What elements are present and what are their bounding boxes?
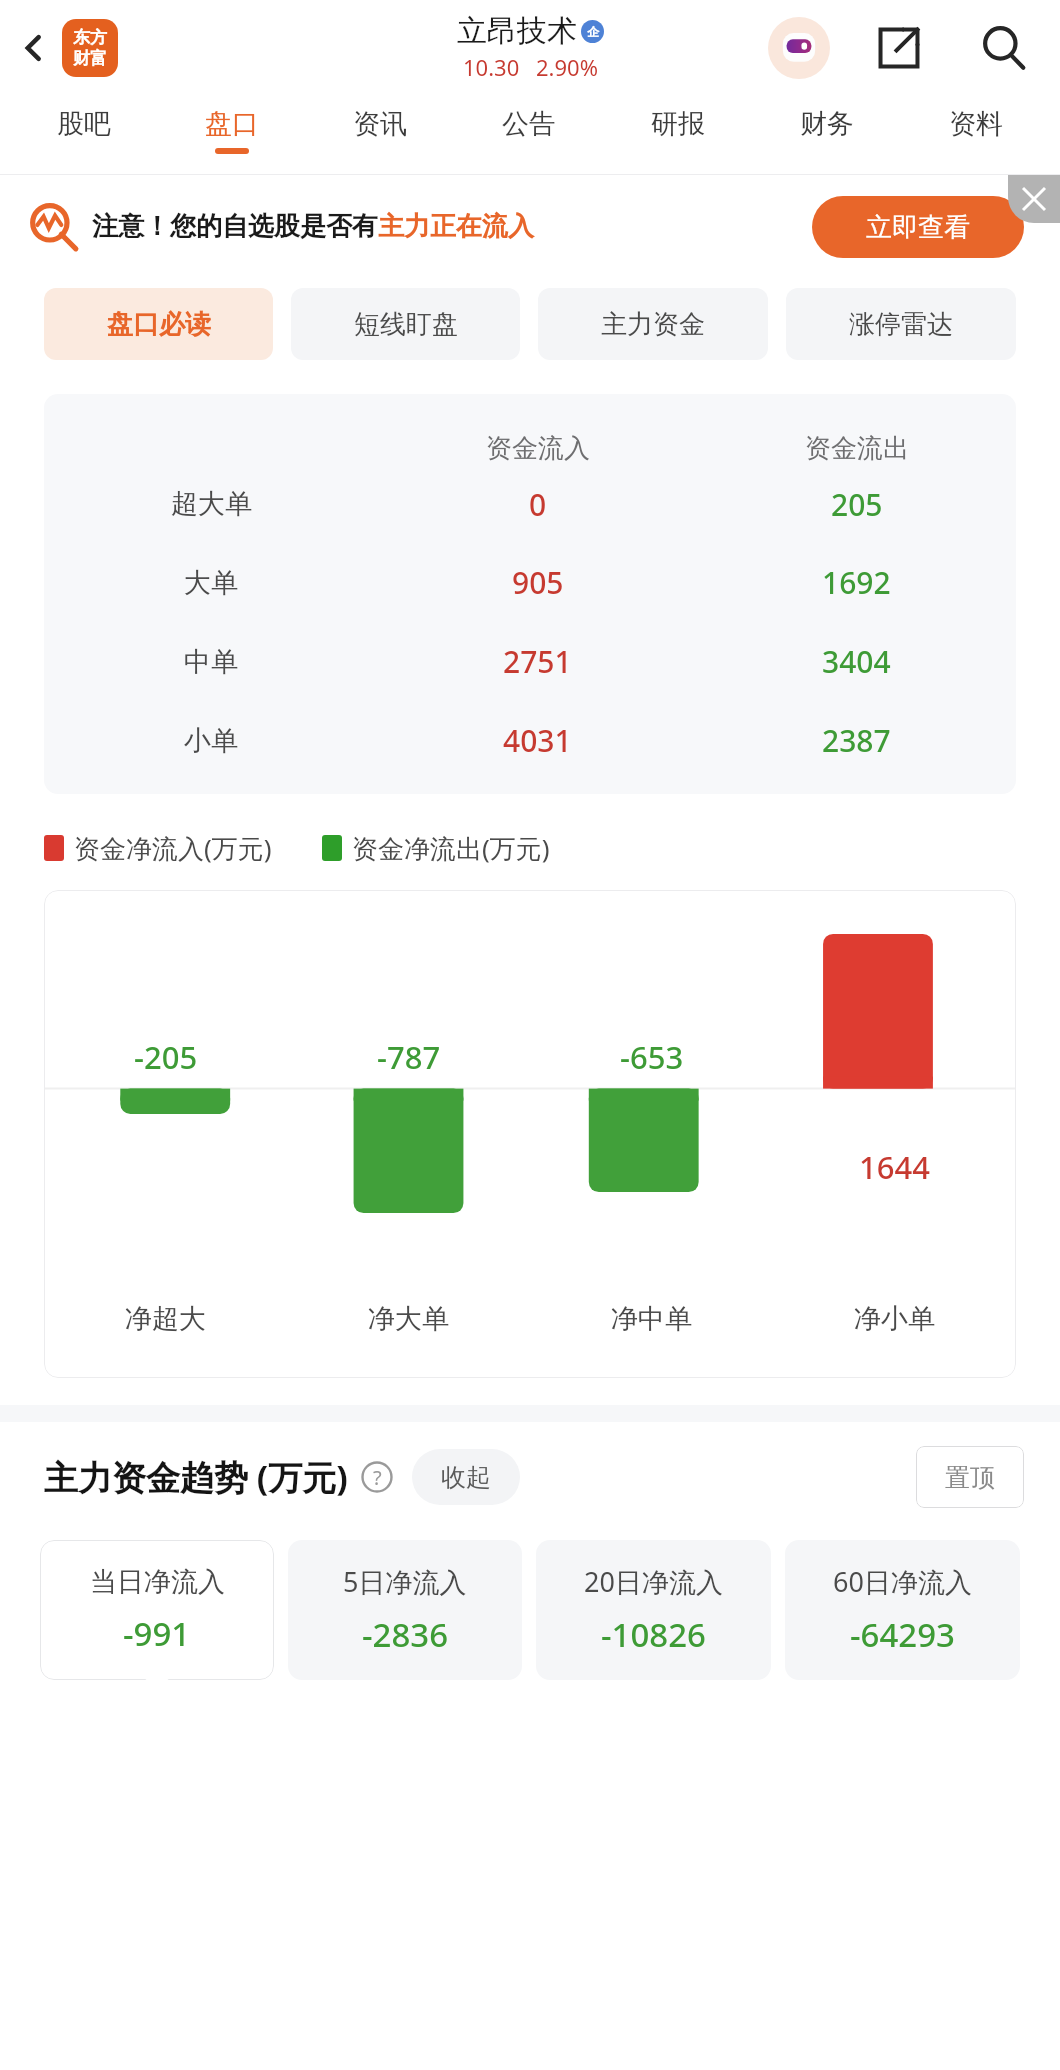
button[interactable]: 公告 (454, 96, 603, 174)
staticText: 资金流入 (486, 432, 590, 465)
staticText: 905 (512, 562, 564, 603)
button[interactable]: 短线盯盘 (291, 288, 520, 360)
button[interactable]: Share (864, 13, 934, 83)
button[interactable]: 股吧 (10, 96, 158, 174)
staticText: 主力正在流入 (378, 210, 534, 243)
button[interactable]: Search (966, 10, 1042, 86)
staticText: 中单 (184, 645, 238, 679)
staticText: 净超大 (125, 1302, 206, 1336)
staticText: -10826 (601, 1612, 706, 1657)
button[interactable]: 财务 (752, 96, 901, 174)
staticText: 资金净流出(万元) (352, 830, 550, 866)
staticText: 立昂技术 (457, 12, 577, 50)
button[interactable]: 立即查看 (812, 196, 1024, 258)
staticText: 60日净流入 (833, 1563, 972, 1600)
staticText: 资料 (949, 107, 1003, 141)
staticText: 置顶 (945, 1462, 995, 1493)
staticText: 主力资金 (601, 308, 705, 341)
button[interactable]: 当日净流入 (40, 1540, 274, 1680)
staticText: 收起 (441, 1462, 491, 1493)
staticText: 净小单 (854, 1302, 935, 1336)
button[interactable]: 60日净流入 (785, 1540, 1020, 1680)
staticText: ? (373, 1464, 382, 1491)
button[interactable]: 盘口必读 (44, 288, 273, 360)
staticText: 205 (831, 484, 883, 525)
staticText: 超大单 (171, 487, 252, 521)
staticText: 5日净流入 (343, 1563, 467, 1600)
staticText: 10.30 (463, 52, 520, 82)
staticText: 盘口 (205, 107, 259, 141)
staticText: 注意！您的自选股是否有 (92, 210, 378, 243)
staticText: 主力资金趋势 (万元) (44, 1454, 348, 1500)
staticText: 20日净流入 (584, 1563, 723, 1600)
button[interactable]: 关闭 (1008, 175, 1060, 223)
staticText: 资金净流入(万元) (74, 830, 272, 866)
staticText: 大单 (184, 566, 238, 600)
button[interactable]: 说明 (360, 1460, 394, 1494)
button[interactable]: 资讯 (306, 96, 454, 174)
staticText: -653 (620, 1036, 684, 1078)
staticText: 1644 (859, 1146, 930, 1188)
staticText: 资讯 (353, 107, 407, 141)
staticText: 2.90% (536, 52, 598, 82)
staticText: -2836 (362, 1612, 449, 1657)
staticText: -64293 (850, 1612, 955, 1657)
staticText: 财富 (73, 48, 107, 69)
staticText: 资金流出 (805, 432, 909, 465)
button[interactable]: 5日净流入 (288, 1540, 522, 1680)
staticText: 3404 (822, 641, 891, 682)
button[interactable]: AI 助手 (768, 17, 830, 79)
button[interactable]: 资料 (901, 96, 1050, 174)
staticText: -787 (377, 1036, 441, 1078)
button[interactable]: 涨停雷达 (786, 288, 1016, 360)
button[interactable]: 东方财富 (62, 19, 118, 77)
button[interactable]: Back (6, 20, 62, 76)
staticText: 涨停雷达 (849, 308, 953, 341)
staticText: 2387 (822, 720, 891, 761)
staticText: 1692 (822, 562, 891, 603)
staticText: -205 (134, 1036, 198, 1078)
staticText: 短线盯盘 (354, 308, 458, 341)
staticText: 净大单 (368, 1302, 449, 1336)
staticText: 企 (587, 24, 599, 39)
staticText: -991 (123, 1611, 191, 1656)
staticText: 0 (529, 484, 547, 525)
button[interactable]: 置顶 (916, 1446, 1024, 1508)
button[interactable]: 主力资金 (538, 288, 768, 360)
staticText: 股吧 (57, 107, 111, 141)
staticText: 研报 (651, 107, 705, 141)
staticText: 盘口必读 (107, 308, 211, 341)
button[interactable]: 20日净流入 (536, 1540, 771, 1680)
staticText: 4031 (503, 720, 572, 761)
button[interactable]: 收起 (412, 1449, 520, 1505)
staticText: 财务 (800, 107, 854, 141)
staticText: 立即查看 (866, 211, 970, 244)
button[interactable]: 研报 (603, 96, 752, 174)
staticText: 2751 (503, 641, 572, 682)
staticText: 小单 (184, 724, 238, 758)
staticText: 净中单 (611, 1302, 692, 1336)
button[interactable]: 盘口 (158, 96, 306, 174)
staticText: 公告 (502, 107, 556, 141)
staticText: 当日净流入 (90, 1565, 225, 1599)
staticText: 东方 (73, 27, 107, 48)
